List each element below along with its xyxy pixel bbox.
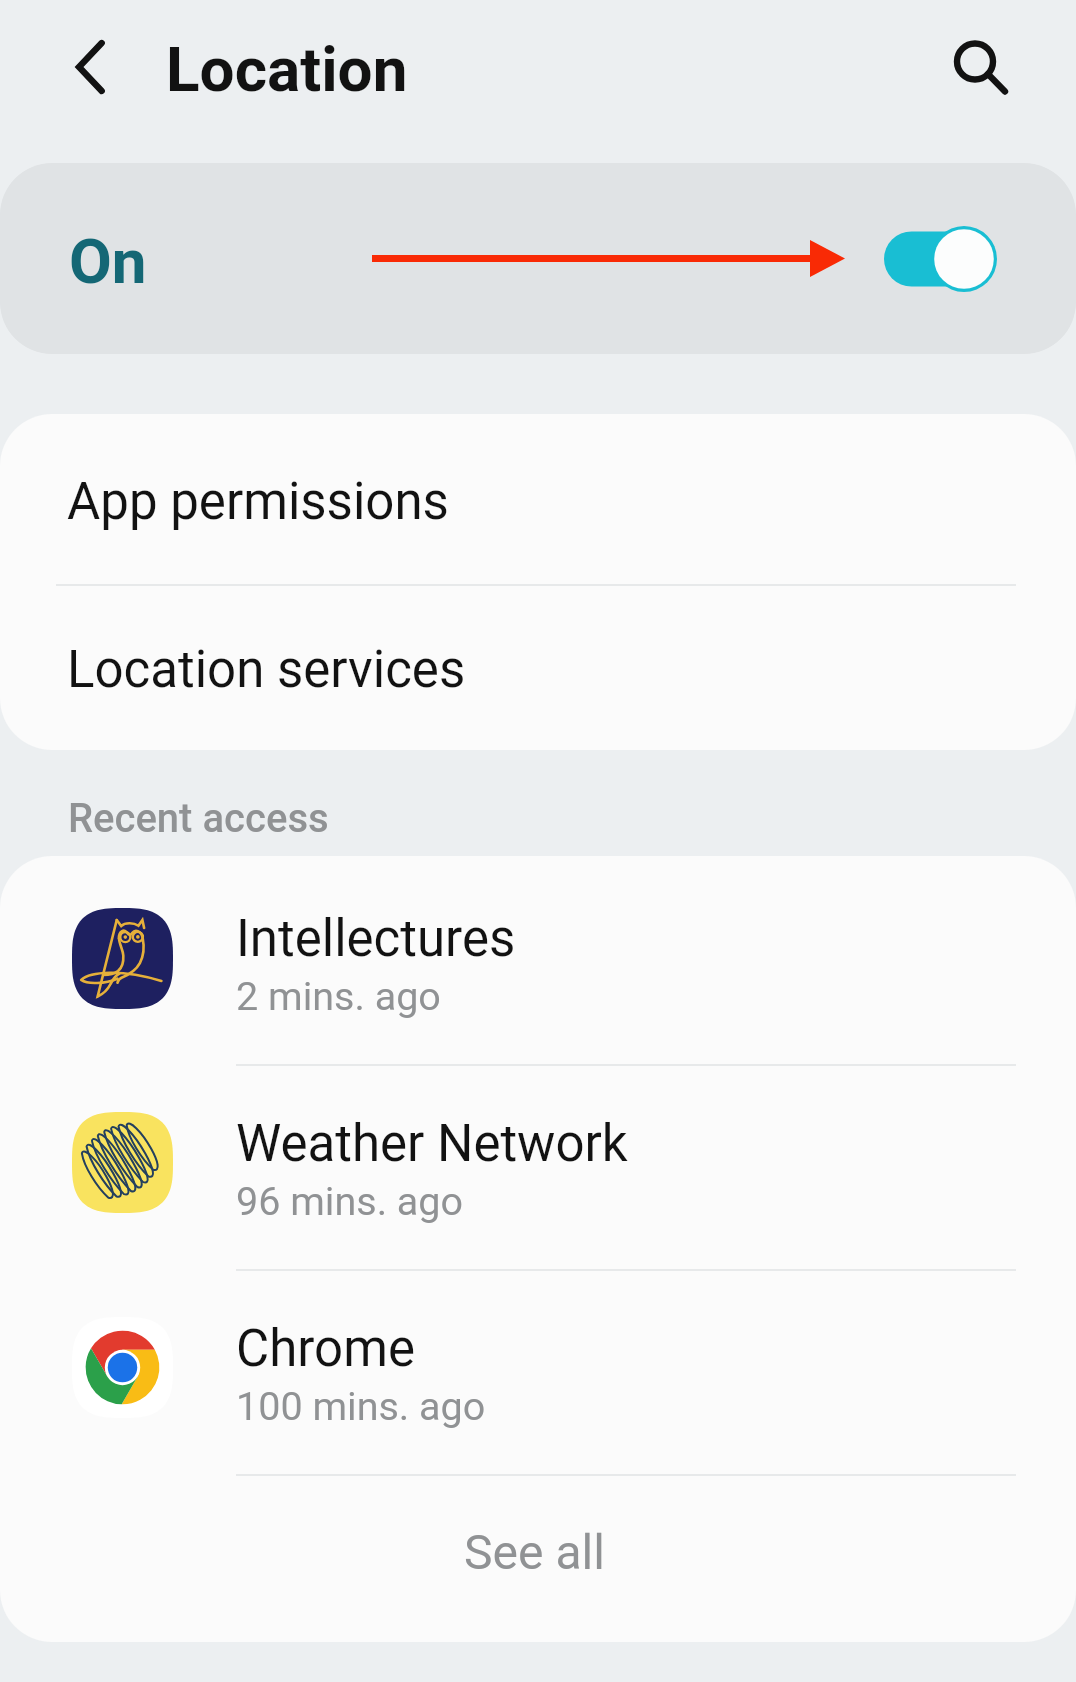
button[interactable]: See all xyxy=(0,1476,1076,1642)
staticText: Location xyxy=(166,33,408,106)
button[interactable]: Location services xyxy=(0,586,1076,750)
button[interactable]: Search xyxy=(931,18,1019,106)
button[interactable]: Weather Network xyxy=(0,1064,1076,1269)
button[interactable]: Location on xyxy=(876,218,1004,300)
staticText: Recent access xyxy=(68,795,329,842)
staticText: Weather Network xyxy=(236,1114,628,1174)
button[interactable]: On xyxy=(0,163,1076,354)
staticText: App permissions xyxy=(67,472,449,532)
button[interactable]: Intellectures xyxy=(0,856,1076,1064)
staticText: See all xyxy=(464,1524,605,1580)
staticText: 100 mins. ago xyxy=(236,1383,486,1429)
staticText: Chrome xyxy=(236,1319,415,1379)
staticText: On xyxy=(69,225,147,298)
button[interactable]: App permissions xyxy=(0,414,1076,584)
button[interactable]: Chrome xyxy=(0,1269,1076,1474)
staticText: Location services xyxy=(67,640,466,700)
staticText: 2 mins. ago xyxy=(236,973,441,1019)
staticText: Intellectures xyxy=(236,909,516,969)
staticText: 96 mins. ago xyxy=(236,1178,464,1224)
button[interactable]: Navigate up xyxy=(45,25,129,109)
